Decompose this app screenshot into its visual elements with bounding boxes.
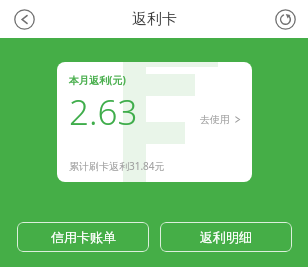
- staticText: 累计刷卡返利31.84元: [69, 159, 165, 173]
- staticText: 本月返利(元): [69, 73, 126, 87]
- button[interactable]: 返利明细: [160, 222, 292, 252]
- button[interactable]: Refresh: [272, 6, 298, 32]
- button[interactable]: 去使用: [198, 110, 243, 129]
- staticText: 2.63: [69, 88, 138, 136]
- staticText: 信用卡账单: [51, 229, 116, 245]
- button[interactable]: 本月返利(元): [57, 62, 252, 182]
- button[interactable]: 信用卡账单: [17, 222, 149, 252]
- staticText: 去使用: [200, 113, 230, 126]
- staticText: 返利卡: [132, 10, 177, 29]
- staticText: 返利明细: [200, 229, 252, 245]
- button[interactable]: Back: [11, 6, 37, 32]
